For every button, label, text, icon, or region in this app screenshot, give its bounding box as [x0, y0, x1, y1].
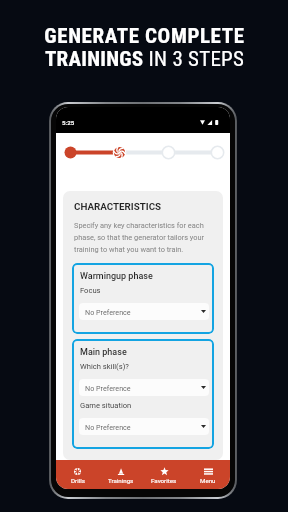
button[interactable]: No Preference	[79, 418, 209, 435]
staticText: CHARACTERISTICS	[74, 201, 162, 212]
staticText: GENERATE COMPLETE TRAININGS IN 3 STEPS	[44, 24, 245, 71]
staticText: Main phase	[80, 347, 127, 358]
button[interactable]: Menu	[186, 460, 230, 489]
staticText: No Preference	[85, 384, 131, 392]
staticText: Warmingup phase	[80, 271, 153, 282]
staticText: Game situation	[80, 401, 132, 410]
staticText: Trainings	[108, 477, 134, 484]
staticText: Specify any key characteristics for each…	[74, 221, 213, 254]
staticText: Menu	[200, 477, 216, 484]
staticText: Drills	[71, 477, 85, 484]
button[interactable]: No Preference	[79, 303, 209, 320]
staticText: Favorites	[151, 477, 177, 484]
button[interactable]: No Preference	[79, 379, 209, 396]
staticText: Focus	[80, 286, 101, 295]
staticText: No Preference	[85, 423, 131, 431]
button[interactable]: Trainings	[99, 460, 142, 489]
button[interactable]: Favorites	[142, 460, 186, 489]
button[interactable]: Drills	[56, 460, 99, 489]
staticText: Which skill(s)?	[80, 362, 129, 371]
staticText: No Preference	[85, 308, 131, 316]
staticText: 5:25	[62, 119, 75, 126]
